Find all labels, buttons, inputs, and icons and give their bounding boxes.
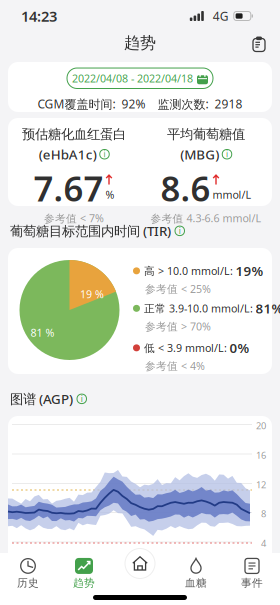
staticText: i [226,149,228,159]
staticText: 参考值 < 4% [145,359,205,373]
staticText: 低 < 3.9 mmol/L: [144,341,227,355]
staticText: % [105,187,114,202]
button[interactable]: 主页 [112,553,168,599]
staticText: 14:23 [21,6,57,26]
staticText: 4G [213,8,229,24]
button[interactable]: 报告 [251,35,265,50]
staticText: 0% [229,339,249,357]
staticText: 图谱 (AGP) [10,390,73,408]
button[interactable]: 2022/04/08 - 2022/04/18 [67,68,213,88]
staticText: 19 % [80,287,104,301]
staticText: 7.67 [33,165,103,211]
button[interactable]: 事件 [224,553,280,599]
staticText: 趋势 [73,576,95,589]
button[interactable]: 血糖 [168,553,224,599]
button[interactable]: 说明 [222,149,232,159]
staticText: (MBG) [180,145,219,163]
staticText: i [179,225,181,236]
staticText: 8.6 [160,165,210,211]
staticText: 事件 [241,576,263,589]
staticText: 参考值 < 7% [44,211,104,225]
staticText: 趋势 [124,33,156,53]
staticText: 参考值 > 70% [145,319,211,333]
button[interactable]: 说明 [77,394,86,404]
staticText: i [81,393,83,404]
staticText: 81% [255,299,280,317]
staticText: 8 [261,507,266,520]
staticText: 4 [261,537,266,549]
staticText: 81 % [30,325,54,340]
staticText: 血糖 [185,576,207,589]
staticText: 19% [235,262,263,280]
button[interactable]: 说明 [175,226,184,236]
button[interactable]: 说明 [100,149,109,159]
staticText: 正常 3.9-10.0 mmol/L: [144,301,253,315]
staticText: 参考值 4.3-6.6 mmol/L [150,211,261,225]
staticText: 平均葡萄糖值 [167,126,245,142]
staticText: 预估糖化血红蛋白 [22,126,126,142]
staticText: CGM覆盖时间: 92% 监测次数: 2918 [37,96,242,112]
staticText: 参考值 < 25% [145,282,211,296]
button[interactable]: 趋势 [56,553,112,599]
staticText: 20 [256,419,266,432]
staticText: 葡萄糖目标范围内时间 (TIR) [10,222,171,240]
staticText: i [103,149,105,159]
staticText: 16 [256,449,266,461]
staticText: 12 [256,478,266,491]
staticText: (eHbA1c) [39,145,97,163]
staticText: 高 > 10.0 mmol/L: [144,264,233,278]
staticText: mmol/L [212,187,251,202]
staticText: 2022/04/08 - 2022/04/18 [72,71,193,85]
staticText: 历史 [17,576,39,589]
button[interactable]: 历史 [0,553,56,599]
